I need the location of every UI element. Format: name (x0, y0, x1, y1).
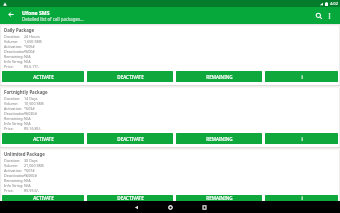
staticText: Price: (4, 188, 14, 193)
staticText: N/A (24, 178, 31, 183)
button[interactable]: i (265, 195, 338, 201)
staticText: ACTIVATE (33, 195, 54, 201)
staticText: DEACTIVATE (117, 195, 144, 201)
button[interactable]: DEACTIVATE (87, 71, 173, 82)
staticText: N/A (24, 183, 31, 188)
staticText: Activation: (4, 44, 23, 49)
staticText: 10,500 SMS (24, 101, 44, 106)
staticText: N/A (24, 54, 31, 59)
staticText: ACTIVATE (33, 74, 54, 80)
button[interactable]: ACTIVATE (2, 71, 84, 82)
staticText: Daily Package (4, 27, 35, 33)
staticText: Remaining: (4, 116, 24, 121)
staticText: Volume: (4, 101, 19, 106)
staticText: N/A (24, 116, 31, 121)
button[interactable]: More options (324, 7, 335, 24)
staticText: RS.16.85/- (24, 126, 42, 131)
staticText: 14 Days (24, 96, 38, 101)
button[interactable]: Home (164, 201, 177, 213)
staticText: N/A (24, 59, 31, 64)
staticText: Ufone SMS (22, 9, 50, 16)
staticText: REMAINING (206, 74, 233, 80)
staticText: 1,600 SMS (24, 39, 42, 44)
staticText: Price: (4, 64, 14, 69)
staticText: Volume: (4, 39, 19, 44)
staticText: Info String: (4, 183, 24, 188)
staticText: *603# (24, 106, 35, 111)
staticText: Info String: (4, 59, 24, 64)
staticText: Deactivation: (4, 49, 27, 54)
staticText: Remaining: (4, 178, 24, 183)
staticText: Activation: (4, 168, 23, 173)
staticText: Volume: (4, 163, 19, 168)
staticText: i (301, 136, 303, 142)
button[interactable]: REMAINING (176, 133, 262, 144)
staticText: 4:02 (330, 1, 338, 6)
staticText: 21,000 SMS (24, 163, 44, 168)
staticText: 30 Days (24, 158, 38, 163)
button[interactable]: Search (313, 7, 324, 24)
button[interactable]: DEACTIVATE (87, 195, 173, 201)
staticText: Price: (4, 126, 14, 131)
staticText: *607# (24, 168, 35, 173)
staticText: Unlimited Package (4, 151, 45, 157)
staticText: Fortnightly Package (4, 89, 48, 95)
button[interactable]: ACTIVATE (2, 133, 84, 144)
staticText: Duration: (4, 34, 21, 39)
staticText: DEACTIVATE (117, 74, 144, 80)
staticText: N/A (24, 121, 31, 126)
staticText: REMAINING (206, 136, 233, 142)
staticText: i (301, 74, 303, 80)
button[interactable]: i (265, 71, 338, 82)
button[interactable]: REMAINING (176, 71, 262, 82)
staticText: *6060# (24, 173, 37, 178)
staticText: Deactivation: (4, 111, 27, 116)
staticText: Duration: (4, 158, 21, 163)
staticText: *605# (24, 44, 35, 49)
button[interactable]: Back (0, 7, 20, 24)
button[interactable]: i (265, 133, 338, 144)
staticText: Info String: (4, 121, 24, 126)
staticText: *500# (24, 49, 35, 54)
staticText: Deactivation: (4, 173, 27, 178)
staticText: Detailed list of call packages... (22, 16, 84, 22)
staticText: i (301, 195, 303, 201)
button[interactable]: REMAINING (176, 195, 262, 201)
staticText: Duration: (4, 96, 21, 101)
staticText: Remaining: (4, 54, 24, 59)
button[interactable]: ACTIVATE (2, 195, 84, 201)
button[interactable]: Back (130, 201, 143, 213)
staticText: DEACTIVATE (117, 136, 144, 142)
staticText: Activation: (4, 106, 23, 111)
staticText: 24 Hours (24, 34, 40, 39)
button[interactable]: Recents (198, 201, 211, 213)
button[interactable]: DEACTIVATE (87, 133, 173, 144)
staticText: *6030# (24, 111, 37, 116)
staticText: RS.6.77/- (24, 64, 40, 69)
staticText: ACTIVATE (33, 136, 54, 142)
staticText: REMAINING (206, 195, 233, 201)
staticText: RS.95.6/- (24, 188, 40, 193)
